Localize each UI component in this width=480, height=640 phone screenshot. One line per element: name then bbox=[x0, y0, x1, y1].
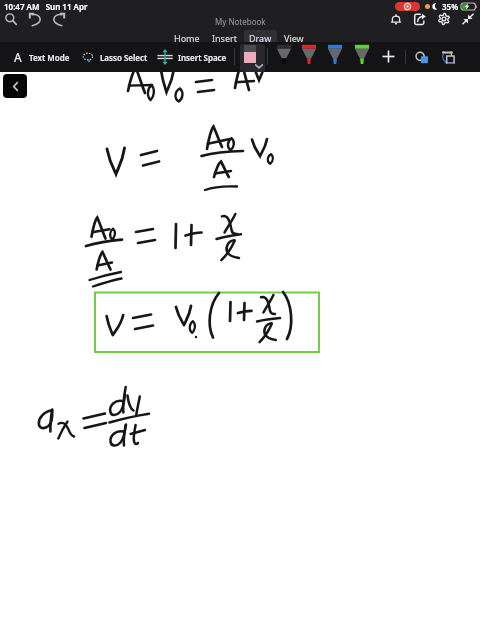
staticText: Insert bbox=[212, 32, 237, 44]
button[interactable]: Pen bbox=[301, 42, 317, 66]
button[interactable]: Lasso Select bbox=[82, 51, 148, 63]
button[interactable]: Search bbox=[0, 7, 23, 31]
button[interactable]: Ink to shape bbox=[412, 47, 432, 67]
staticText: Lasso Select bbox=[100, 52, 148, 63]
button[interactable]: Share bbox=[408, 7, 432, 31]
button[interactable]: Insert Space bbox=[157, 49, 227, 65]
button[interactable]: Undo bbox=[23, 7, 47, 31]
button[interactable]: Insert bbox=[207, 30, 242, 46]
button[interactable]: Add pen bbox=[379, 47, 398, 66]
staticText: Home bbox=[174, 32, 200, 44]
button[interactable]: Draw bbox=[244, 30, 277, 46]
button[interactable]: View bbox=[279, 30, 309, 46]
staticText: Insert Space bbox=[178, 52, 227, 63]
button[interactable]: Back bbox=[3, 74, 27, 98]
button[interactable]: Pen bbox=[276, 42, 292, 66]
button[interactable]: Notifications bbox=[384, 7, 408, 31]
staticText: My Notebook bbox=[215, 16, 266, 27]
button[interactable]: Home bbox=[169, 30, 205, 46]
button[interactable]: A bbox=[14, 49, 70, 65]
staticText: View bbox=[284, 32, 304, 44]
staticText: A bbox=[14, 49, 22, 65]
button[interactable]: Redo bbox=[47, 7, 71, 31]
staticText: 10:47 AM Sun 11 Apr bbox=[4, 1, 88, 12]
staticText: Text Mode bbox=[29, 52, 70, 63]
button[interactable]: Settings bbox=[432, 7, 456, 31]
button[interactable]: Highlighter bbox=[240, 44, 265, 72]
staticText: 35% bbox=[442, 1, 459, 12]
button[interactable]: Pen bbox=[327, 42, 343, 66]
button[interactable]: Pen bbox=[354, 42, 370, 66]
staticText: Draw bbox=[249, 32, 272, 44]
button[interactable]: Ink to math bbox=[438, 47, 458, 67]
button[interactable]: Collapse bbox=[456, 7, 480, 31]
